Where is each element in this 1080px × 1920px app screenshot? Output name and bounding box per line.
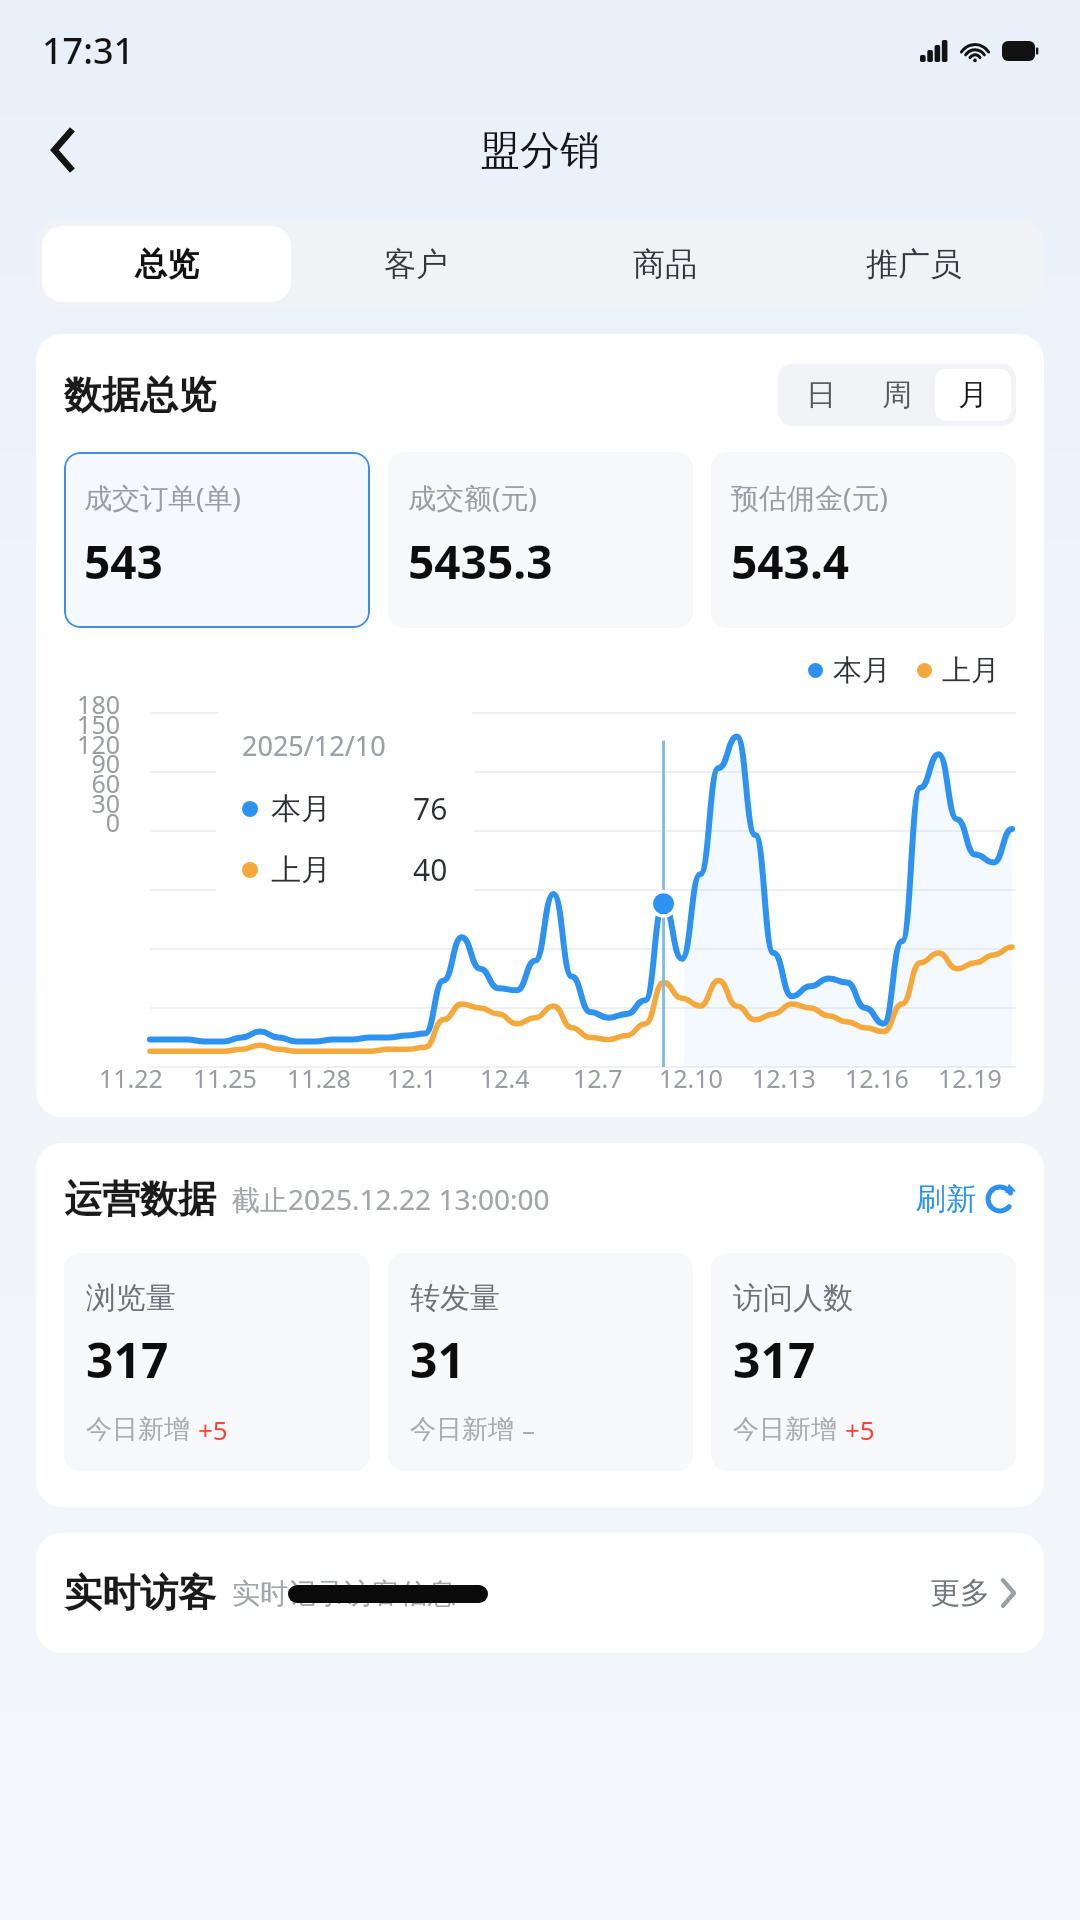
button[interactable]: 日 [783,369,859,421]
staticText: 317 [86,1327,169,1392]
staticText: 上月 [271,851,331,889]
staticText: 180 [64,687,120,721]
staticText: 周 [882,376,912,414]
staticText: – [522,1412,536,1447]
staticText: 截止2025.12.22 13:00:00 [232,1180,550,1218]
button[interactable]: 更多 [930,1574,1016,1612]
staticText: 盟分销 [480,125,600,175]
button[interactable]: 刷新 [916,1180,1016,1218]
staticText: 客户 [384,244,448,284]
staticText: 总览 [135,244,199,284]
staticText: 实时访客 [64,1569,216,1617]
staticText: 11.25 [193,1061,257,1095]
staticText: 60 [64,766,120,800]
staticText: 浏览量 [86,1279,176,1317]
button[interactable]: 转发量 [388,1253,693,1471]
staticText: 上月 [942,652,1000,689]
staticText: 12.16 [845,1061,909,1095]
staticText: 120 [64,727,120,761]
button[interactable]: 成交订单(单) [64,452,370,628]
staticText: 2025/12/10 [242,727,386,764]
staticText: 推广员 [866,244,962,284]
staticText: 11.28 [287,1061,351,1095]
button[interactable]: 商品 [540,226,789,302]
staticText: 12.19 [938,1061,1002,1095]
staticText: 12.13 [752,1061,816,1095]
button[interactable]: 客户 [291,226,540,302]
staticText: 成交额(元) [408,478,537,516]
staticText: 31 [410,1327,465,1392]
button[interactable]: 预估佣金(元) [711,452,1016,628]
staticText: 今日新增 [410,1413,514,1446]
staticText: 40 [413,849,448,890]
staticText: 150 [64,707,120,741]
staticText: 今日新增 [86,1413,190,1446]
staticText: 30 [64,786,120,820]
staticText: 数据总览 [64,371,216,419]
staticText: 月 [958,376,988,414]
staticText: 17:31 [42,26,135,75]
button[interactable]: 月 [935,369,1011,421]
button[interactable]: 成交额(元) [388,452,693,628]
staticText: 运营数据 [64,1175,216,1223]
staticText: 今日新增 [733,1413,837,1446]
staticText: +5 [198,1412,228,1447]
staticText: 76 [413,788,448,829]
staticText: 543.4 [731,530,850,593]
button[interactable]: Back [26,112,102,188]
staticText: 更多 [930,1574,990,1612]
staticText: 商品 [633,244,697,284]
staticText: 12.4 [480,1061,530,1095]
staticText: 0 [64,805,120,839]
staticText: 预估佣金(元) [731,478,888,516]
staticText: 5435.3 [408,530,553,593]
staticText: 转发量 [410,1279,500,1317]
staticText: 317 [733,1327,816,1392]
staticText: 日 [806,376,836,414]
button[interactable]: 访问人数 [711,1253,1016,1471]
staticText: 12.1 [387,1061,437,1095]
button[interactable]: 总览 [42,226,291,302]
staticText: 本月 [271,790,331,828]
staticText: 90 [64,746,120,780]
staticText: 实时记录访客信息 [232,1576,456,1611]
staticText: 刷新 [916,1180,976,1218]
staticText: +5 [845,1412,875,1447]
staticText: 12.7 [573,1061,623,1095]
staticText: 访问人数 [733,1279,853,1317]
staticText: 本月 [833,652,891,689]
button[interactable]: 浏览量 [64,1253,370,1471]
staticText: 11.22 [99,1061,163,1095]
button[interactable]: 周 [859,369,935,421]
button[interactable]: 推广员 [789,226,1038,302]
staticText: 12.10 [659,1061,723,1095]
staticText: 543 [84,530,163,593]
staticText: 成交订单(单) [84,478,241,516]
